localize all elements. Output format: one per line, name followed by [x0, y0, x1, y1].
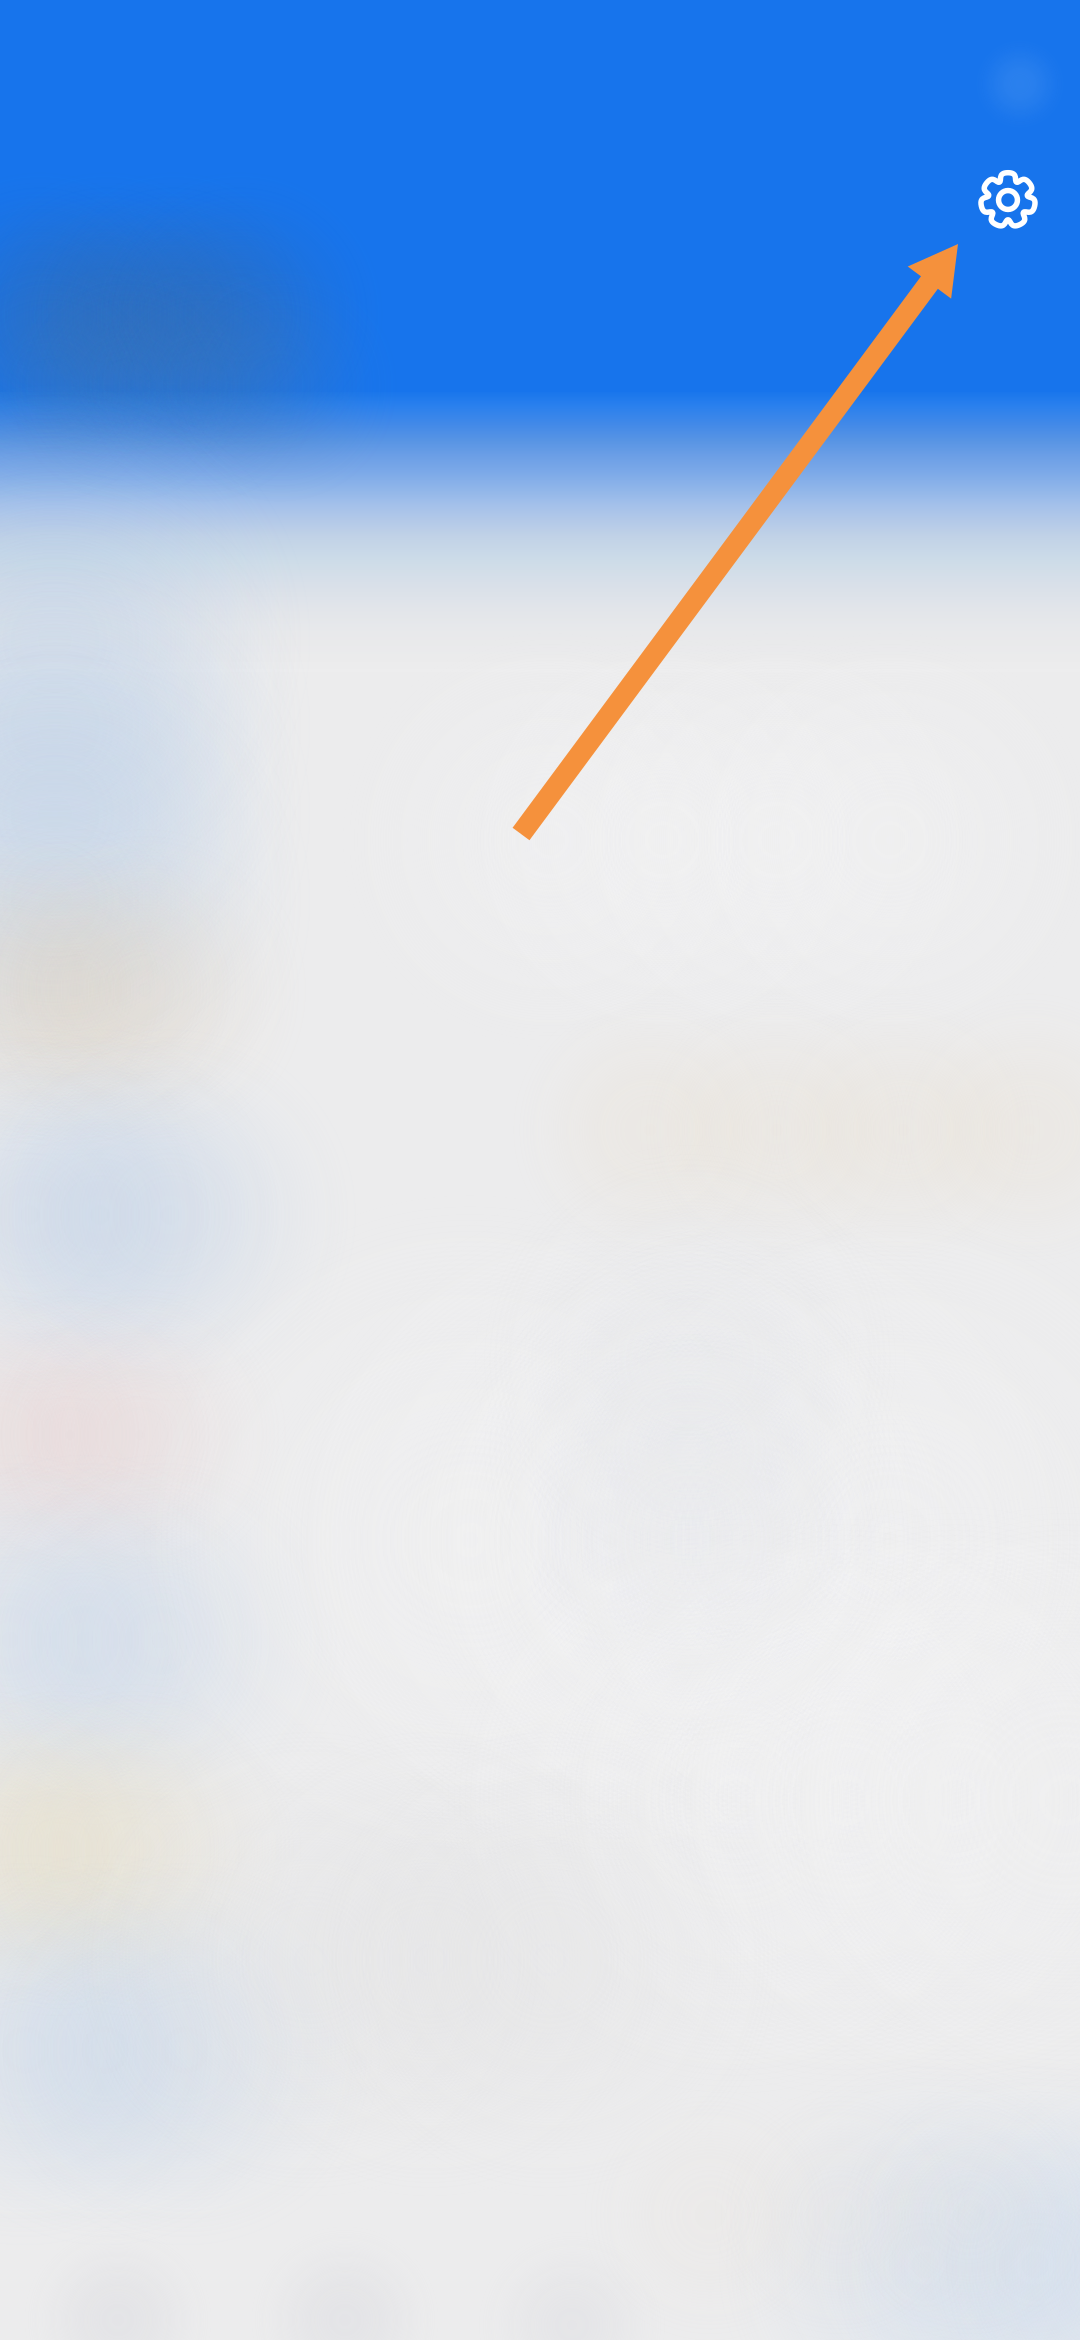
button[interactable]: Settings [956, 148, 1060, 252]
